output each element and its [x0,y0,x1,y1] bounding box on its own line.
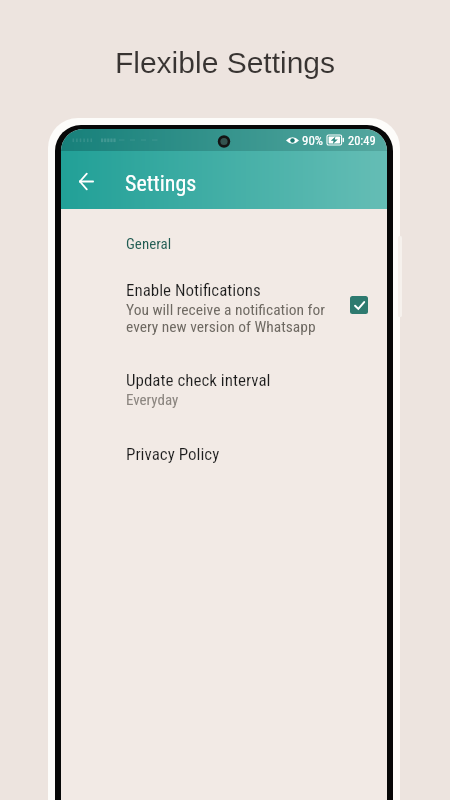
staticText: General [126,235,172,253]
staticText: Flexible Settings [0,46,450,80]
staticText: Settings [125,171,197,197]
button[interactable]: Back [68,163,104,199]
button[interactable]: Enable notifications toggle [350,296,368,314]
staticText: Privacy Policy [126,444,220,464]
staticText: Update check interval [126,370,271,390]
button[interactable]: Privacy Policy [61,444,387,464]
staticText: Enable Notifications [126,280,261,300]
button[interactable]: Update check interval [61,370,387,409]
staticText: You will receive a notification for ever… [126,301,335,336]
staticText: 90% [302,133,324,148]
button[interactable]: Enable Notifications [61,280,387,336]
staticText: 20:49 [348,133,376,148]
staticText: Everyday [126,391,179,409]
